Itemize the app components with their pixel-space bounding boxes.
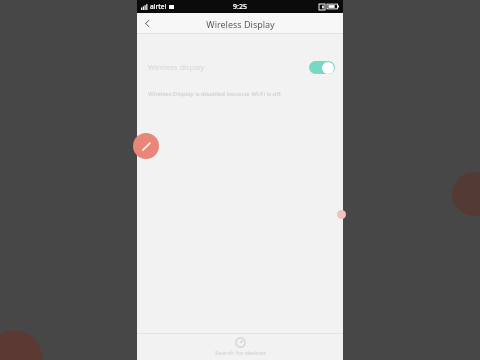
staticText: airtel bbox=[150, 2, 167, 11]
staticText: Wireless Display is disabled because Wi-… bbox=[148, 90, 282, 98]
button[interactable]: Search for devices bbox=[137, 334, 343, 360]
staticText: Search for devices bbox=[215, 349, 266, 357]
staticText: Wireless Display bbox=[206, 18, 275, 30]
button[interactable]: Back bbox=[137, 13, 158, 34]
staticText: Wireless display bbox=[148, 62, 309, 72]
button[interactable]: Edit bbox=[133, 133, 159, 159]
button[interactable]: Wireless display toggle bbox=[309, 61, 335, 74]
staticText: 9:25 bbox=[233, 2, 247, 12]
button[interactable]: Wireless display bbox=[137, 56, 343, 78]
